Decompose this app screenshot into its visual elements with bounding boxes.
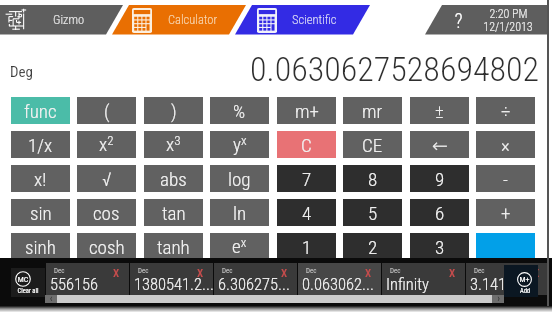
button[interactable]: x2 [77, 131, 136, 158]
staticText: yx [233, 133, 247, 156]
button[interactable]: mr [343, 97, 402, 124]
button[interactable]: Dec [130, 263, 213, 295]
staticText: x3 [166, 133, 181, 156]
button[interactable]: 5 [343, 199, 402, 226]
staticText: X [113, 267, 120, 280]
button[interactable]: ex [210, 233, 269, 260]
staticText: 7 [302, 168, 312, 190]
staticText: 1/x [28, 134, 53, 156]
button[interactable]: ± [410, 97, 469, 124]
staticText: Deg [10, 63, 33, 81]
staticText: Dec [222, 267, 233, 275]
button[interactable]: func [11, 97, 70, 124]
staticText: X [281, 267, 288, 280]
button[interactable]: + [476, 199, 535, 226]
button[interactable]: CE [343, 131, 402, 158]
button[interactable]: ) [144, 97, 203, 124]
staticText: X [197, 267, 204, 280]
staticText: Dec [474, 267, 485, 275]
button[interactable]: Dec [466, 263, 549, 295]
button[interactable]: 4 [277, 199, 336, 226]
staticText: 3 [435, 236, 445, 258]
staticText: C [301, 134, 312, 156]
button[interactable]: Dec [382, 263, 465, 295]
button[interactable]: Memory add [504, 265, 538, 297]
button[interactable]: yx [210, 131, 269, 158]
button[interactable]: sinh [11, 233, 70, 260]
staticText: Dec [138, 267, 149, 275]
button[interactable]: ÷ [476, 97, 535, 124]
staticText: ‹ [45, 293, 57, 305]
button[interactable]: x3 [144, 131, 203, 158]
staticText: M+ [517, 275, 532, 284]
button[interactable]: tan [144, 199, 203, 226]
staticText: CE [362, 134, 383, 156]
button[interactable]: 8 [343, 165, 402, 192]
staticText: Clear all [11, 287, 45, 295]
button[interactable] [476, 233, 535, 260]
staticText: √ [102, 168, 112, 190]
staticText: func [24, 100, 57, 122]
button[interactable]: 9 [410, 165, 469, 192]
staticText: 2 [368, 236, 378, 258]
staticText: sinh [25, 236, 56, 258]
staticText: ex [232, 235, 247, 258]
staticText: sin [30, 202, 52, 224]
button[interactable]: C [277, 131, 336, 158]
button[interactable]: Dec [298, 263, 381, 295]
staticText: Infinity [386, 275, 429, 294]
staticText: ) [171, 100, 177, 122]
staticText: ( [104, 100, 110, 122]
staticText: 6.306275... [218, 275, 290, 294]
staticText: x! [34, 168, 47, 190]
button[interactable]: ← [410, 131, 469, 158]
button[interactable]: x! [11, 165, 70, 192]
button[interactable]: cos [77, 199, 136, 226]
button[interactable]: Memory clear all [11, 268, 45, 297]
staticText: log [228, 168, 251, 190]
button[interactable]: 1/x [11, 131, 70, 158]
button[interactable]: sin [11, 199, 70, 226]
button[interactable]: ( [77, 97, 136, 124]
staticText: 0.0630627528694802 [250, 49, 539, 89]
button[interactable]: % [210, 97, 269, 124]
staticText: x2 [99, 133, 114, 156]
staticText: + [501, 202, 511, 224]
staticText: 1 [302, 236, 312, 258]
button[interactable]: Dec [46, 263, 129, 295]
staticText: X [533, 267, 540, 280]
staticText: 556156 [50, 275, 99, 294]
button[interactable]: Dec [214, 263, 297, 295]
staticText: tan [162, 202, 186, 224]
button[interactable]: 1 [277, 233, 336, 260]
button[interactable]: m+ [277, 97, 336, 124]
staticText: tanh [157, 236, 190, 258]
staticText: Add [508, 287, 542, 295]
staticText: Gizmo [53, 12, 85, 27]
staticText: Dec [306, 267, 317, 275]
button[interactable]: 6 [410, 199, 469, 226]
button[interactable]: log [210, 165, 269, 192]
staticText: mr [362, 100, 383, 122]
button[interactable]: ln [210, 199, 269, 226]
button[interactable]: 3 [410, 233, 469, 260]
staticText: 8 [368, 168, 378, 190]
staticText: MC [15, 275, 31, 284]
button[interactable]: abs [144, 165, 203, 192]
staticText: ± [435, 100, 444, 122]
staticText: ÷ [501, 100, 511, 122]
button[interactable]: 7 [277, 165, 336, 192]
button[interactable]: tanh [144, 233, 203, 260]
staticText: cosh [89, 236, 125, 258]
staticText: 0.063062... [302, 275, 374, 294]
button[interactable]: √ [77, 165, 136, 192]
staticText: × [501, 134, 510, 156]
button[interactable]: × [476, 131, 535, 158]
button[interactable]: cosh [77, 233, 136, 260]
button[interactable]: 2 [343, 233, 402, 260]
button[interactable]: - [476, 165, 535, 192]
staticText: ? [454, 9, 463, 32]
staticText: X [449, 267, 456, 280]
staticText: 3.141 [470, 275, 507, 294]
staticText: ln [233, 202, 247, 224]
